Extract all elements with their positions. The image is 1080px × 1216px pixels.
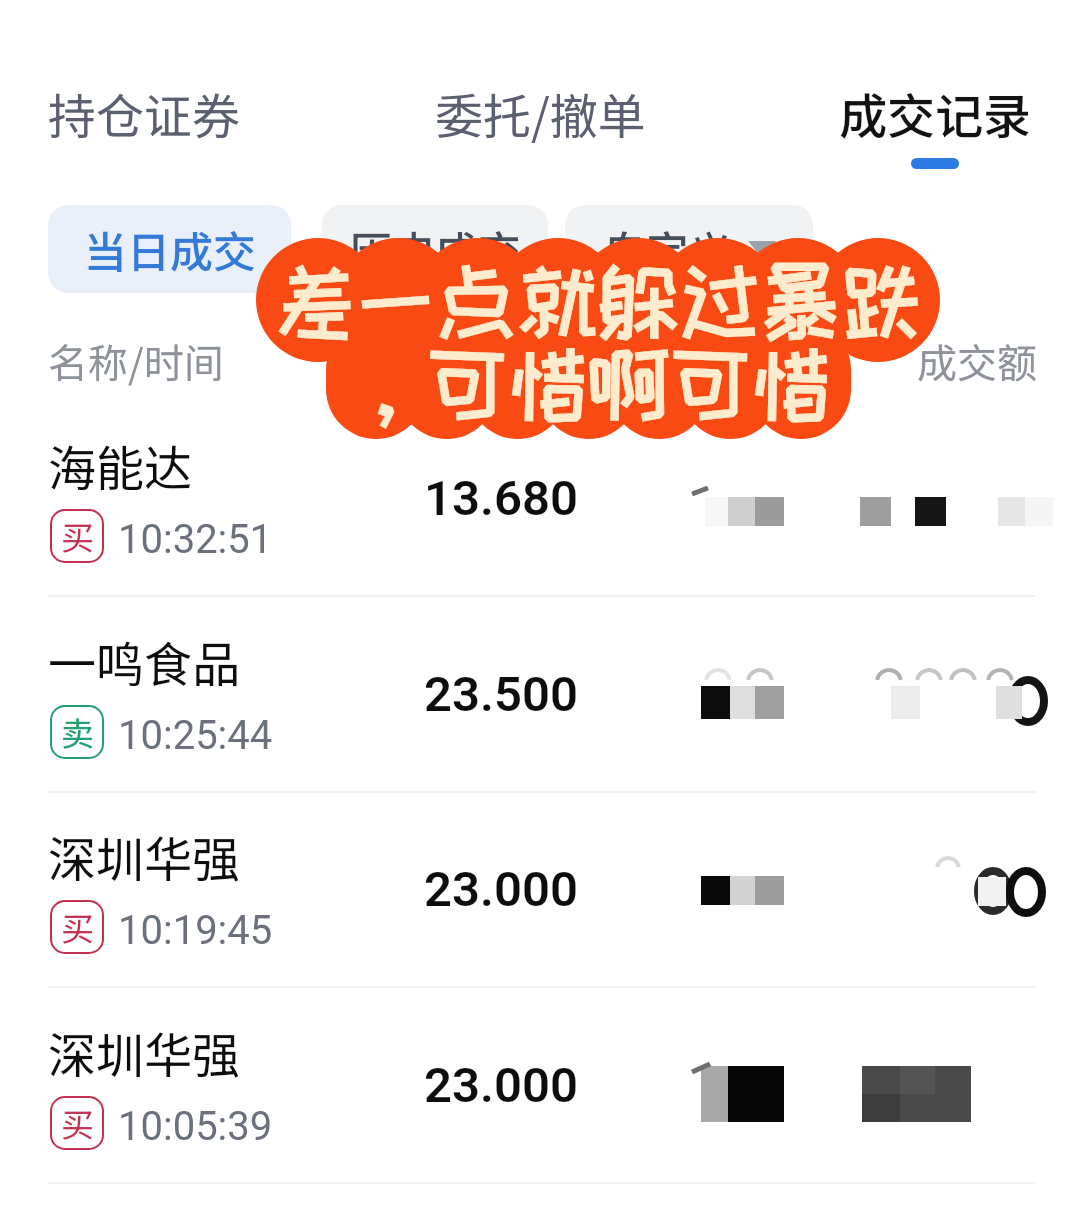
button[interactable]: 委托/撤单 xyxy=(390,0,690,188)
staticText: 买 xyxy=(61,512,94,560)
button[interactable]: 成交记录 xyxy=(790,0,1080,188)
staticText: 10:25:44 xyxy=(118,712,273,759)
button[interactable]: 历史成交 xyxy=(322,205,548,293)
staticText: 自定义 xyxy=(603,218,732,280)
staticText: 买 xyxy=(61,1099,94,1147)
button[interactable]: 海能达 xyxy=(0,402,1080,597)
staticText: 深圳华强 xyxy=(48,1017,241,1087)
button[interactable]: 持仓证券 xyxy=(0,0,288,188)
staticText: 23.000 xyxy=(424,861,578,918)
button[interactable]: 当日成交 xyxy=(48,205,291,293)
other: Expand date range xyxy=(748,241,776,258)
button[interactable]: 自定义 xyxy=(565,205,813,293)
staticText: 委托/撤单 xyxy=(435,78,646,148)
staticText: 当日成交 xyxy=(84,218,256,280)
staticText: 成交额 xyxy=(917,332,1037,390)
staticText: 10:19:45 xyxy=(118,907,273,954)
staticText: 买 xyxy=(61,903,94,951)
staticText: 一鸣食品 xyxy=(48,626,241,696)
staticText: ，可惜啊可惜 xyxy=(326,340,851,428)
staticText: 海能达 xyxy=(48,430,193,500)
staticText: 23.000 xyxy=(424,1057,578,1114)
staticText: 13.680 xyxy=(424,470,578,527)
staticText: 持仓证券 xyxy=(48,78,241,148)
staticText: 卖 xyxy=(61,708,94,756)
staticText: 深圳华强 xyxy=(48,821,241,891)
button[interactable]: 深圳华强 xyxy=(0,793,1080,988)
staticText: 差一点就躲过暴跌 xyxy=(256,257,940,345)
staticText: 23.500 xyxy=(424,666,578,723)
staticText: 10:05:39 xyxy=(118,1103,273,1150)
button[interactable]: 一鸣食品 xyxy=(0,598,1080,793)
staticText: 成交记录 xyxy=(839,78,1032,148)
button[interactable]: 深圳华强 xyxy=(0,989,1080,1184)
staticText: 名称/时间 xyxy=(48,332,224,390)
staticText: 10:32:51 xyxy=(118,516,273,563)
staticText: 历史成交 xyxy=(349,218,521,280)
